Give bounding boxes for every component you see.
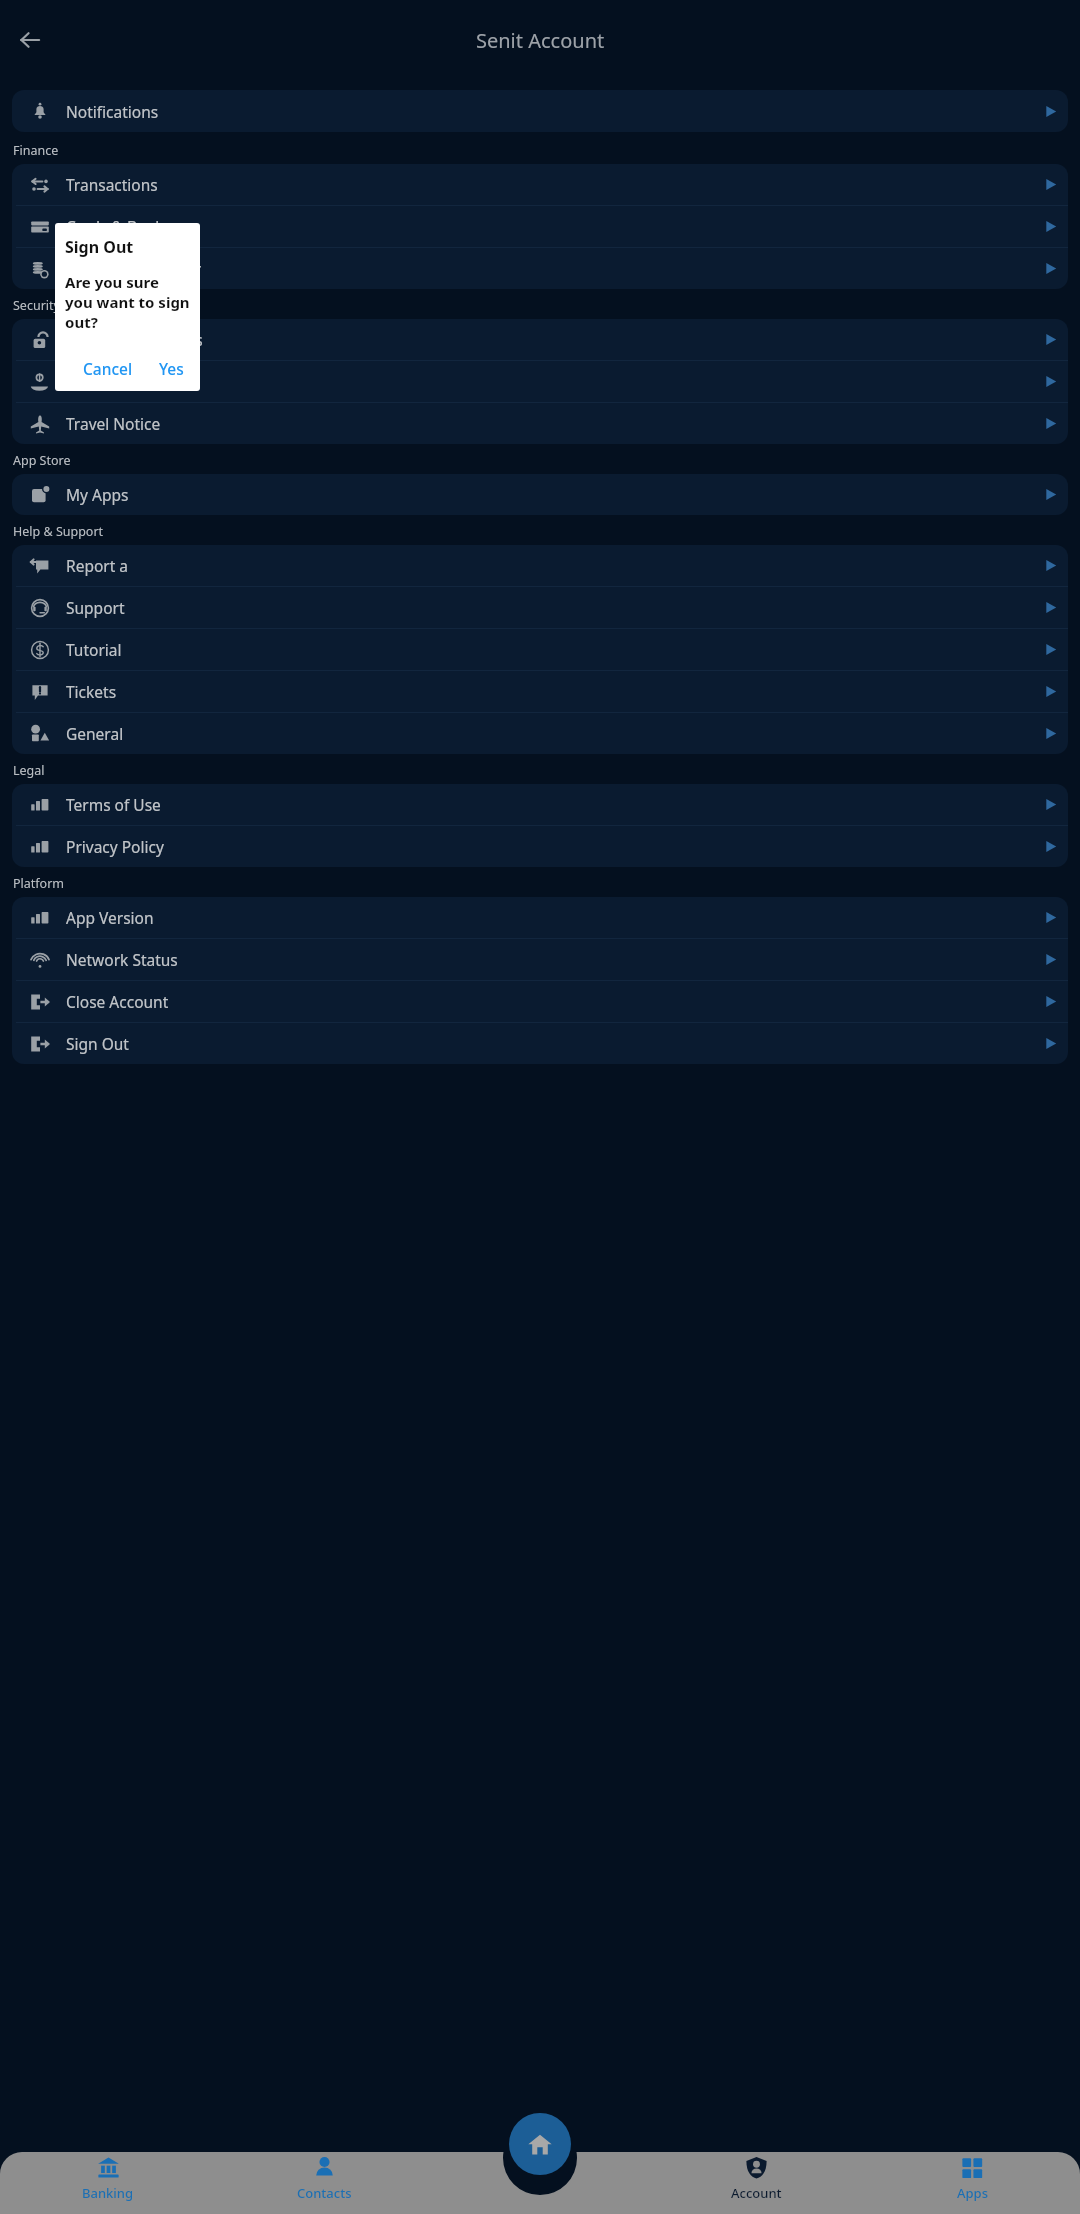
staticText: Notifications — [66, 101, 159, 122]
staticText: Support — [66, 597, 125, 618]
staticText: Platform — [13, 875, 65, 892]
button[interactable]: Report a — [12, 545, 1068, 586]
staticText: Finance — [13, 142, 59, 159]
staticText: General — [66, 723, 124, 744]
button[interactable]: Back — [6, 16, 54, 64]
staticText: My Apps — [66, 484, 129, 505]
button[interactable]: Cancel — [77, 354, 139, 383]
button[interactable]: Sign Out — [12, 1023, 1068, 1064]
button[interactable]: Tutorial — [12, 629, 1068, 670]
staticText: Sign Out — [66, 1033, 129, 1054]
button[interactable]: Security & Settings — [12, 319, 1068, 360]
staticText: Network Status — [66, 949, 178, 970]
button[interactable]: Terms of Use — [12, 784, 1068, 825]
staticText: Close Account — [66, 991, 169, 1012]
button[interactable]: Cards & Banks — [12, 206, 1068, 247]
button[interactable]: Account — [648, 2156, 864, 2214]
staticText: App Store — [13, 452, 71, 469]
button[interactable]: Banking — [0, 2156, 216, 2214]
button[interactable]: My Apps — [12, 474, 1068, 515]
staticText: Terms of Use — [66, 794, 161, 815]
staticText: App Version — [66, 907, 154, 928]
staticText: Apps — [957, 2184, 988, 2202]
staticText: Help & Support — [13, 523, 104, 540]
staticText: Senit Account — [476, 27, 605, 54]
staticText: Limits — [66, 371, 110, 392]
staticText: Report a — [66, 555, 129, 576]
button[interactable]: Close Account — [12, 981, 1068, 1022]
staticText: Sign Out — [65, 236, 134, 258]
staticText: Contacts — [297, 2184, 352, 2202]
button[interactable]: Limits — [12, 361, 1068, 402]
staticText: Travel Notice — [66, 413, 161, 434]
button[interactable]: Contacts — [216, 2156, 432, 2214]
button[interactable]: Support — [12, 587, 1068, 628]
staticText: Privacy Policy — [66, 836, 164, 857]
button[interactable]: Apps — [864, 2156, 1080, 2214]
button[interactable]: General — [12, 713, 1068, 754]
staticText: Transactions — [66, 174, 158, 195]
button[interactable]: Home — [509, 2130, 571, 2192]
staticText: Cards & Banks — [66, 216, 171, 237]
staticText: Banking — [82, 2184, 134, 2202]
staticText: Security — [13, 297, 60, 314]
staticText: Yes — [159, 358, 184, 379]
button[interactable]: Transactions — [12, 164, 1068, 205]
staticText: Account — [731, 2184, 782, 2202]
staticText: Tickets — [66, 681, 117, 702]
staticText: Tutorial — [66, 639, 122, 660]
button[interactable]: App Version — [12, 897, 1068, 938]
button[interactable]: Travel Notice — [12, 403, 1068, 444]
button[interactable]: Privacy Policy — [12, 826, 1068, 867]
button[interactable]: Currency Manager — [12, 248, 1068, 289]
staticText: Cancel — [83, 358, 133, 379]
button[interactable]: Tickets — [12, 671, 1068, 712]
staticText: Legal — [13, 762, 45, 779]
button[interactable]: Notifications — [12, 90, 1068, 132]
staticText: Are you sure you want to sign out? — [65, 272, 190, 332]
staticText: Security & Settings — [66, 329, 203, 350]
button[interactable]: Yes — [153, 354, 190, 383]
staticText: Currency Manager — [66, 258, 202, 279]
button[interactable]: Network Status — [12, 939, 1068, 980]
